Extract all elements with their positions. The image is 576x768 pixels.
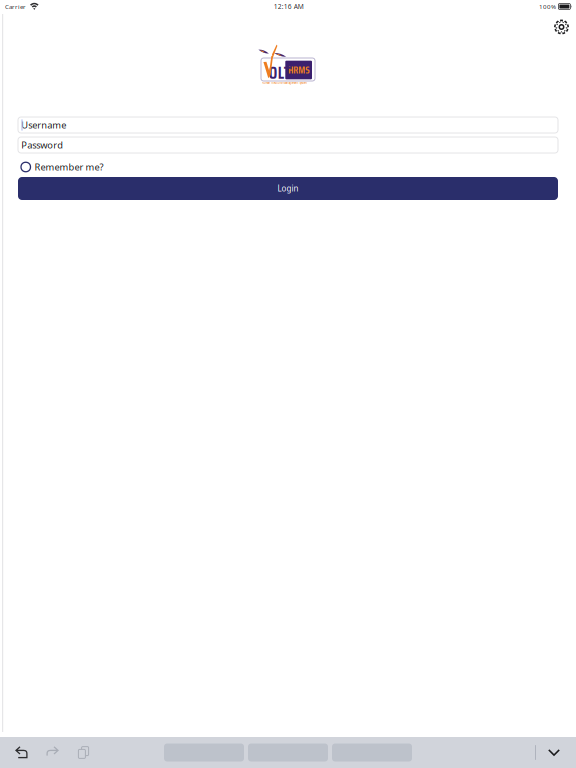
- staticText: Password: [21, 139, 63, 151]
- staticText: Carrier: [5, 2, 26, 11]
- button[interactable]: Hide keyboard: [536, 737, 572, 768]
- button[interactable]: Redo: [37, 737, 68, 768]
- staticText: HRMS: [288, 62, 309, 78]
- button[interactable]: Login: [18, 177, 558, 200]
- button[interactable]: Undo: [6, 737, 37, 768]
- staticText: OLT: [269, 60, 291, 86]
- button[interactable]: Settings: [554, 18, 576, 34]
- staticText: Login: [277, 183, 298, 194]
- staticText: Username: [21, 119, 66, 131]
- button[interactable]: Remember me?: [21, 161, 103, 173]
- staticText: 12:16 AM: [274, 2, 304, 11]
- staticText: Human Resource Management System: [262, 81, 307, 85]
- staticText: Remember me?: [34, 161, 103, 173]
- button[interactable]: Paste: [68, 737, 99, 768]
- staticText: 100%: [539, 2, 556, 11]
